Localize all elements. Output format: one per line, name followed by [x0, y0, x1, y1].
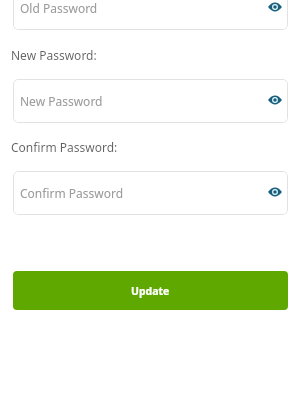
button[interactable]: Show New Password	[256, 81, 294, 119]
button[interactable]: Show Old Password	[256, 0, 294, 26]
button[interactable]: New Password	[13, 79, 288, 123]
staticText: Old Password	[20, 0, 98, 16]
staticText: Confirm Password:	[11, 139, 118, 155]
button[interactable]: Confirm Password	[13, 171, 288, 215]
staticText: Confirm Password	[20, 185, 124, 201]
button[interactable]: Show Confirm Password	[256, 173, 294, 211]
button[interactable]: Update	[13, 271, 288, 310]
button[interactable]: Old Password	[13, 0, 288, 30]
staticText: Update	[131, 284, 170, 298]
staticText: New Password:	[11, 47, 97, 63]
staticText: New Password	[20, 93, 103, 109]
